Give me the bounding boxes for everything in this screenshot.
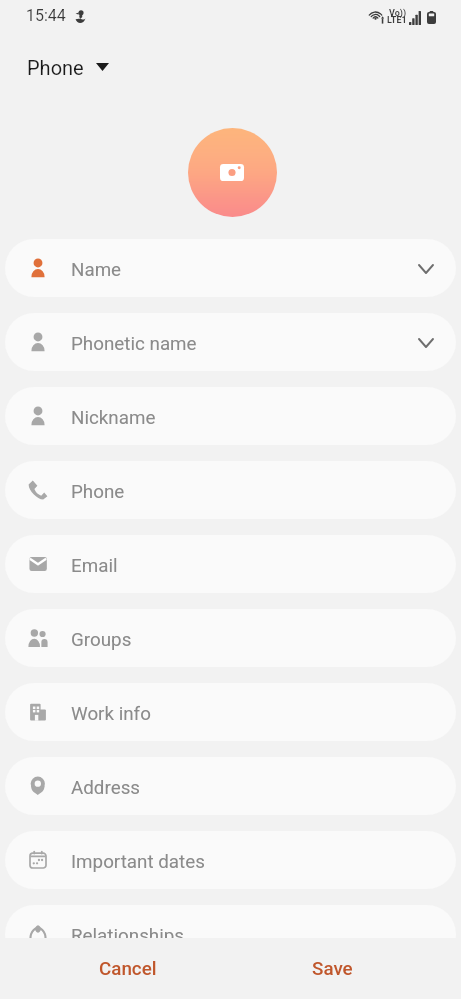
button[interactable]: Nickname bbox=[5, 387, 456, 445]
staticText: Work info bbox=[71, 703, 151, 725]
button[interactable]: Work info bbox=[5, 683, 456, 741]
button[interactable]: Phone bbox=[5, 461, 456, 519]
button[interactable]: Important dates bbox=[5, 831, 456, 889]
button[interactable]: Add photo bbox=[188, 128, 277, 217]
staticText: Save bbox=[312, 958, 353, 980]
staticText: Cancel bbox=[99, 958, 157, 980]
staticText: Nickname bbox=[71, 407, 156, 429]
button[interactable]: Address bbox=[5, 757, 456, 815]
staticText: Relationships bbox=[71, 925, 185, 938]
button[interactable]: Email bbox=[5, 535, 456, 593]
button[interactable]: Save bbox=[230, 938, 435, 999]
staticText: Groups bbox=[71, 629, 132, 651]
staticText: Phone bbox=[71, 481, 125, 503]
button[interactable]: Cancel bbox=[26, 938, 230, 999]
staticText: Important dates bbox=[71, 851, 205, 873]
staticText: LTE1 bbox=[387, 15, 407, 26]
staticText: Address bbox=[71, 777, 141, 799]
button[interactable]: Phonetic name bbox=[5, 313, 456, 371]
button[interactable]: Groups bbox=[5, 609, 456, 667]
staticText: Phonetic name bbox=[71, 333, 197, 355]
button[interactable]: Relationships bbox=[5, 905, 456, 938]
button[interactable]: Name bbox=[5, 239, 456, 297]
button[interactable]: Phone bbox=[0, 46, 125, 88]
staticText: Email bbox=[71, 555, 118, 577]
staticText: 15:44 bbox=[26, 6, 66, 25]
staticText: Phone bbox=[27, 56, 84, 79]
staticText: Name bbox=[71, 259, 122, 281]
staticText: Vo)) bbox=[389, 8, 407, 19]
